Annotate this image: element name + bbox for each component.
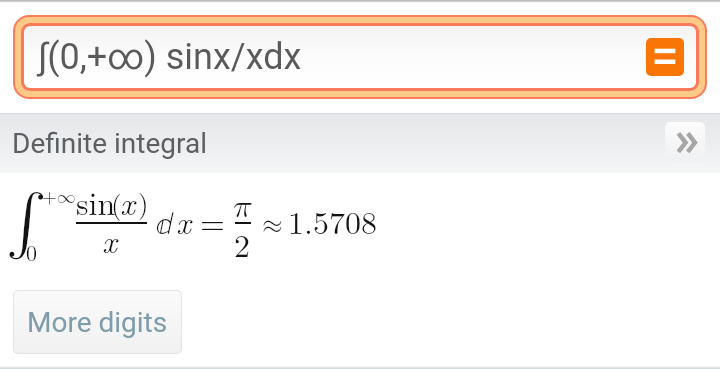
staticText: x xyxy=(102,217,117,262)
button[interactable]: More digits xyxy=(14,291,181,353)
staticText: ) xyxy=(138,183,149,221)
staticText: ⅆ xyxy=(156,208,173,240)
staticText: x xyxy=(120,179,135,224)
button[interactable]: ∫(0,+∞) sinx/xdx xyxy=(24,26,696,88)
staticText: 2 xyxy=(234,221,251,266)
staticText: ≈ xyxy=(262,211,283,238)
staticText: x xyxy=(176,198,191,243)
button[interactable]: Expand section xyxy=(665,122,705,162)
staticText: ∫(0,+∞) sinx/xdx xyxy=(38,36,302,78)
staticText: ∫ xyxy=(6,192,47,253)
staticText: = xyxy=(200,208,225,240)
staticText: 1.5708 xyxy=(288,198,377,243)
button[interactable]: Evaluate xyxy=(646,38,684,76)
staticText: Definite integral xyxy=(12,127,207,160)
staticText: ( xyxy=(111,184,122,222)
staticText: +∞ xyxy=(42,188,76,207)
staticText: 𝜋 xyxy=(233,190,252,223)
staticText: More digits xyxy=(27,306,168,339)
staticText: 0 xyxy=(26,236,38,267)
staticText: sin xyxy=(76,179,116,224)
